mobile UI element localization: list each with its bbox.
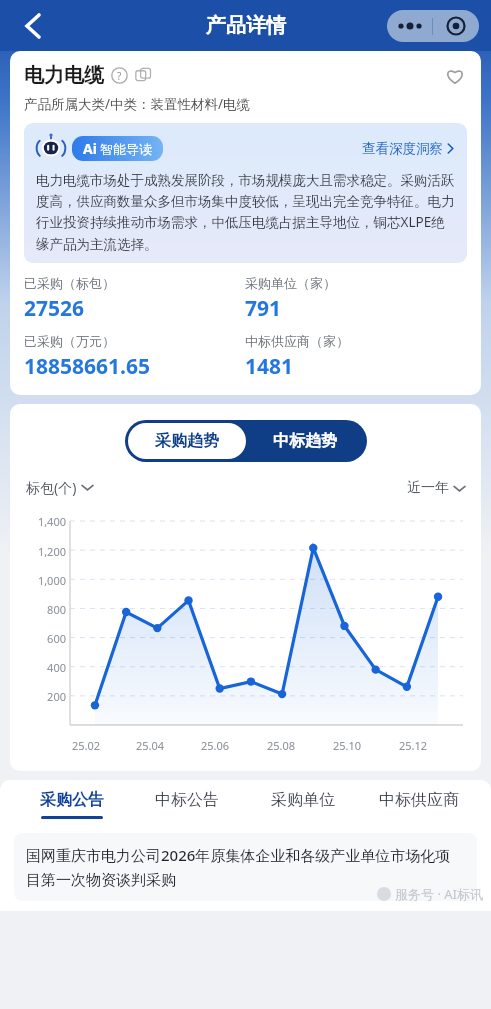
- staticText: 25.04: [136, 738, 165, 753]
- staticText: 1481: [245, 352, 294, 381]
- staticText: 电力电缆: [24, 63, 104, 88]
- staticText: 25.02: [72, 738, 101, 753]
- staticText: 采购公告: [40, 790, 104, 810]
- staticText: 1,400: [22, 514, 66, 529]
- button[interactable]: Close: [433, 10, 479, 42]
- staticText: 采购单位: [271, 790, 335, 810]
- staticText: 中标供应商: [379, 790, 459, 810]
- staticText: 1,200: [22, 544, 66, 559]
- staticText: 近一年: [407, 479, 449, 497]
- staticText: 800: [22, 602, 66, 617]
- staticText: 采购趋势: [155, 431, 219, 451]
- staticText: 已采购（万元）: [24, 333, 115, 349]
- staticText: 600: [22, 631, 66, 646]
- staticText: 已采购（标包）: [24, 275, 115, 291]
- staticText: 791: [245, 294, 282, 323]
- staticText: 中标趋势: [273, 431, 337, 451]
- staticText: 服务号 · AI标讯: [395, 885, 483, 903]
- staticText: 25.10: [333, 738, 362, 753]
- staticText: 国网重庆市电力公司2026年原集体企业和各级产业单位市场化项目第一次物资谈判采购: [26, 845, 465, 889]
- button[interactable]: Ai: [83, 139, 152, 158]
- staticText: ?: [117, 69, 122, 83]
- staticText: 采购单位（家）: [245, 275, 336, 291]
- staticText: 25.06: [201, 738, 230, 753]
- staticText: 中标公告: [155, 790, 219, 810]
- button[interactable]: Help: [111, 67, 128, 84]
- staticText: 1,000: [22, 573, 66, 588]
- button[interactable]: 中标公告: [129, 790, 245, 819]
- button[interactable]: More: [387, 10, 432, 42]
- staticText: 25.08: [267, 738, 296, 753]
- staticText: 智能导读: [100, 141, 152, 157]
- button[interactable]: 近一年: [407, 479, 465, 497]
- button[interactable]: 国网重庆市电力公司2026年原集体企业和各级产业单位市场化项目第一次物资谈判采购: [26, 845, 465, 889]
- button[interactable]: 采购公告: [14, 790, 129, 819]
- button[interactable]: Favorite: [443, 64, 467, 88]
- staticText: 200: [22, 689, 66, 704]
- staticText: Ai: [83, 139, 97, 158]
- button[interactable]: 查看深度洞察: [362, 140, 455, 157]
- button[interactable]: 中标趋势: [246, 423, 364, 459]
- staticText: 27526: [24, 294, 85, 323]
- staticText: 中标供应商（家）: [245, 333, 349, 349]
- staticText: 产品详情: [206, 13, 286, 38]
- button[interactable]: Back: [14, 7, 52, 45]
- button[interactable]: 标包(个): [26, 478, 93, 497]
- staticText: 标包(个): [26, 478, 77, 497]
- button[interactable]: 采购趋势: [128, 423, 246, 459]
- button[interactable]: Copy: [135, 67, 152, 84]
- staticText: 产品所属大类/中类：装置性材料/电缆: [24, 95, 251, 113]
- button[interactable]: 采购单位: [245, 790, 361, 819]
- staticText: 400: [22, 660, 66, 675]
- button[interactable]: 中标供应商: [361, 790, 477, 819]
- staticText: 电力电缆市场处于成熟发展阶段，市场规模庞大且需求稳定。采购活跃度高，供应商数量众…: [36, 172, 455, 253]
- staticText: 25.12: [399, 738, 428, 753]
- staticText: 查看深度洞察: [362, 140, 443, 157]
- staticText: 18858661.65: [24, 352, 151, 381]
